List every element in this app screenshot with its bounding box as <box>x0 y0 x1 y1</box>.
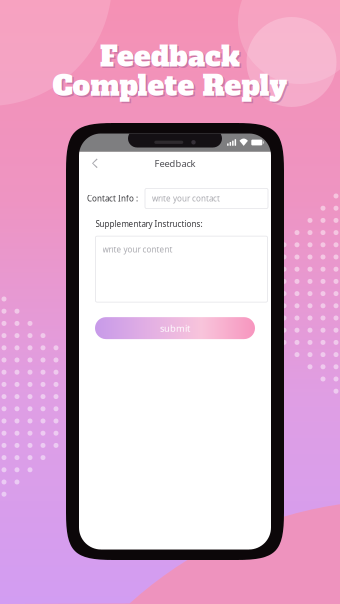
staticText: Feedback <box>100 37 240 76</box>
button[interactable]: submit <box>95 317 255 339</box>
staticText: Feedback <box>154 157 195 170</box>
staticText: Feedback <box>101 39 241 77</box>
staticText: submit <box>160 322 190 334</box>
staticText: Complete Reply <box>52 67 287 105</box>
staticText: Complete Reply <box>54 68 289 107</box>
staticText: write your content <box>102 244 172 255</box>
staticText: write your contact <box>152 193 220 204</box>
staticText: Contact Info : <box>87 193 138 204</box>
button[interactable]: Back <box>85 152 105 174</box>
staticText: Supplementary Instructions: <box>95 218 202 229</box>
